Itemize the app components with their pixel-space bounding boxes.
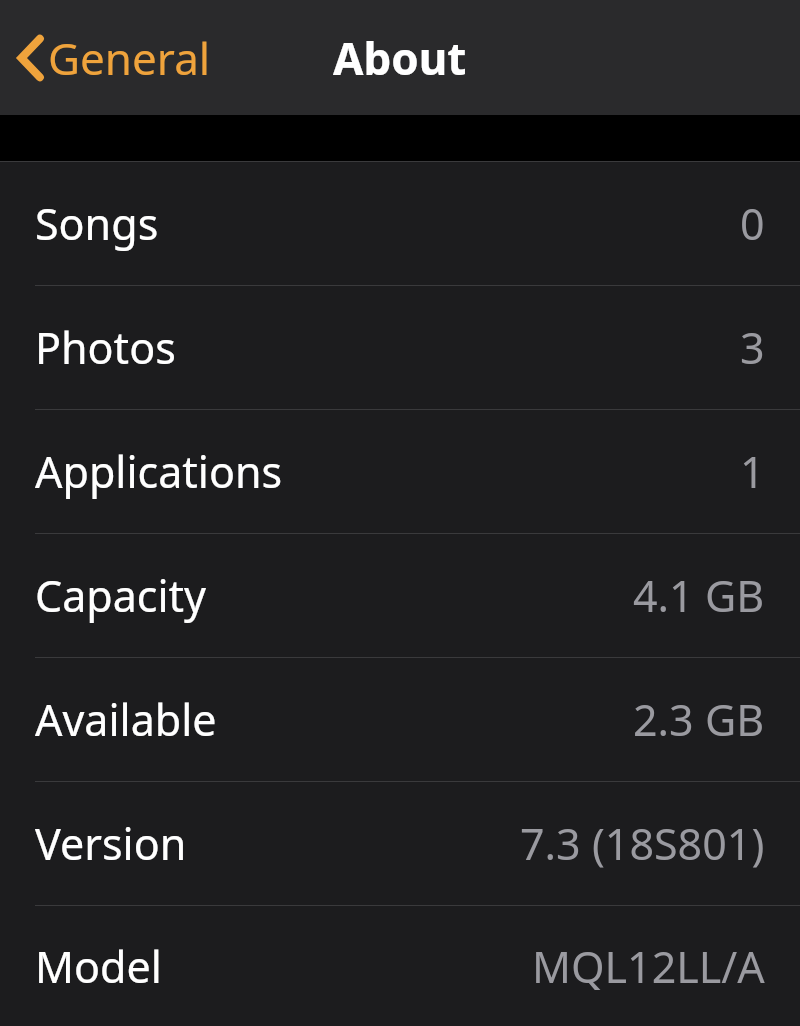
staticText: 0 [740,194,765,253]
staticText: Applications [35,442,283,501]
button[interactable]: Model [0,906,800,1026]
button[interactable]: Applications [0,410,800,533]
other: Back to General [14,32,48,84]
staticText: Version [35,814,187,873]
staticText: MQL12LL/A [532,937,765,996]
staticText: General [48,28,211,88]
staticText: Model [35,937,162,996]
button[interactable]: Available [0,658,800,781]
staticText: Songs [35,194,159,253]
staticText: Photos [35,318,176,377]
button[interactable]: Version [0,782,800,905]
button[interactable]: Photos [0,286,800,409]
staticText: 7.3 (18S801) [520,814,765,873]
staticText: 4.1 GB [633,566,765,625]
staticText: 3 [740,318,765,377]
staticText: Capacity [35,566,207,625]
button[interactable]: Capacity [0,534,800,657]
staticText: 1 [740,442,765,501]
staticText: About [333,28,467,88]
staticText: 2.3 GB [633,690,765,749]
button[interactable]: Songs [0,162,800,285]
button[interactable]: Back to General [14,20,211,96]
staticText: Available [35,690,217,749]
